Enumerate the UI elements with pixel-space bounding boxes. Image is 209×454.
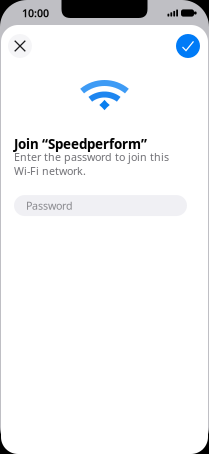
staticText: Join “Speedperform” [14,135,147,153]
button[interactable]: Cancel [8,34,32,58]
staticText: Enter the password to join this Wi-Fi ne… [14,150,169,178]
button[interactable]: Password [14,195,187,216]
staticText: Password [26,198,73,213]
staticText: 10:00 [22,6,49,20]
button[interactable]: Join [176,34,200,58]
